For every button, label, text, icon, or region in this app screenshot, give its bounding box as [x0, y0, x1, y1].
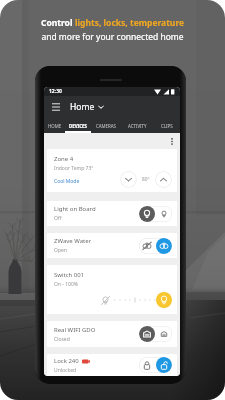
staticText: Lock 240 — [54, 357, 79, 365]
button[interactable]: Real WIFI GDO — [47, 321, 177, 347]
staticText: DEVICES — [69, 123, 87, 129]
staticText: 80° — [142, 176, 150, 183]
button[interactable]: ZWave Water — [47, 233, 177, 258]
staticText: Indoor Temp 73° — [54, 165, 94, 172]
staticText: Light on Board — [54, 205, 96, 213]
button[interactable]: Turn light on — [139, 206, 155, 222]
staticText: Real WIFI GDO — [54, 326, 96, 334]
button[interactable]: ACTIVITY — [121, 118, 153, 133]
staticText: On - 100% — [54, 281, 78, 288]
button[interactable]: Close water valve — [139, 238, 155, 254]
button[interactable]: Switch 001 — [47, 265, 177, 314]
button[interactable]: Set brightness — [156, 292, 172, 308]
button[interactable]: HOME — [44, 118, 65, 133]
staticText: Control — [41, 17, 75, 29]
button[interactable]: Close garage door — [155, 326, 172, 342]
staticText: ACTIVITY — [128, 123, 147, 129]
button[interactable]: Increase temperature — [155, 171, 172, 188]
button[interactable]: More options — [167, 137, 176, 146]
button[interactable]: Open garage door — [139, 326, 155, 342]
staticText: CAMERAS — [96, 123, 116, 129]
staticText: CLIPS — [161, 123, 173, 129]
staticText: Unlocked — [54, 367, 77, 374]
staticText: Closed — [54, 336, 70, 343]
button[interactable]: Decrease temperature — [120, 171, 137, 188]
staticText: 12:30 — [49, 88, 62, 95]
button[interactable]: Lock door — [139, 357, 155, 373]
button[interactable]: Home — [70, 98, 104, 116]
button[interactable]: DEVICES — [65, 118, 91, 133]
staticText: Off — [54, 215, 62, 222]
staticText: ZWave Water — [54, 237, 92, 245]
staticText: Switch 001 — [54, 271, 85, 279]
button[interactable]: Unlock door — [155, 357, 172, 373]
staticText: Open — [54, 247, 67, 254]
button[interactable]: Light on Board — [47, 201, 177, 226]
staticText: Cool Mode — [54, 178, 80, 185]
button[interactable]: CLIPS — [153, 118, 180, 133]
button[interactable]: Open navigation menu — [49, 100, 63, 114]
button[interactable]: CAMERAS — [91, 118, 121, 133]
staticText: Zone 4 — [54, 155, 74, 163]
button[interactable]: Turn light off — [155, 206, 172, 222]
staticText: lights, locks, temperature — [75, 17, 185, 29]
staticText: and more for your connected home — [41, 31, 184, 43]
button[interactable]: Lock 240 — [47, 354, 177, 376]
button[interactable]: Zone 4 — [47, 149, 177, 192]
button[interactable]: Open water valve — [155, 238, 172, 254]
staticText: Home — [70, 101, 95, 113]
staticText: HOME — [48, 123, 62, 129]
